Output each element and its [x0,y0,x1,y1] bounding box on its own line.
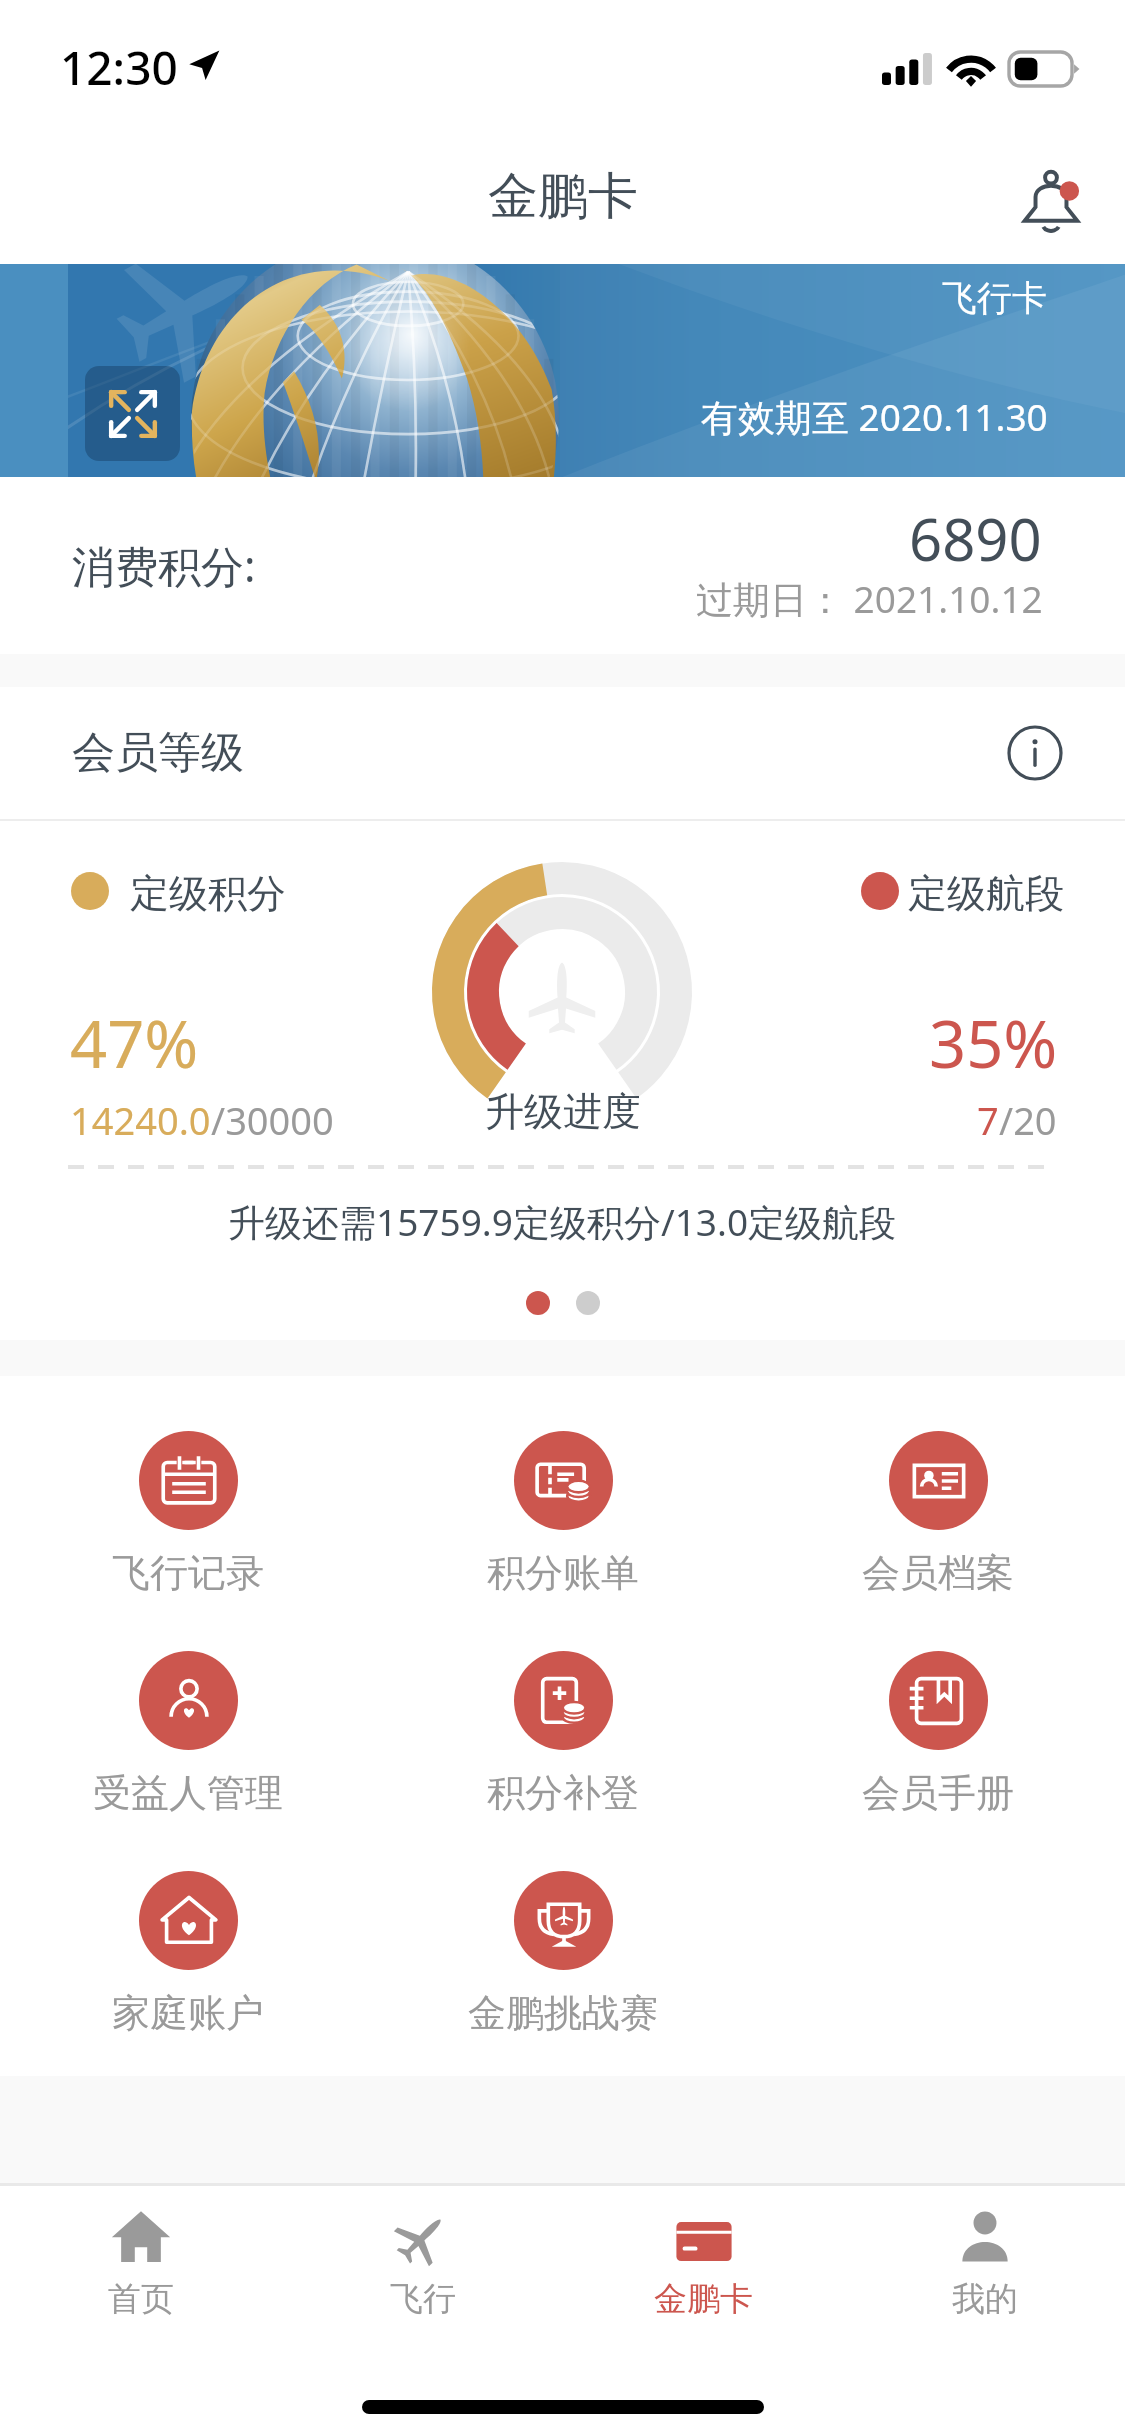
staticText: 47% [70,999,199,1088]
staticText: 6890 [909,499,1042,578]
button[interactable]: Notifications [1007,157,1095,245]
button[interactable]: 首页 [0,2205,282,2320]
button[interactable]: Level info [997,715,1073,791]
staticText: 会员档案 [862,1549,1014,1597]
staticText: 金鹏挑战赛 [468,1989,658,2037]
button[interactable]: 会员手册 [750,1625,1125,1821]
staticText: 过期日： 2021.10.12 [696,573,1043,624]
button[interactable]: 积分补登 [375,1625,750,1821]
staticText: 会员手册 [862,1769,1014,1817]
staticText: 飞行记录 [112,1549,264,1597]
button[interactable]: 金鹏卡 [563,2205,844,2320]
staticText: 金鹏卡 [654,2278,753,2320]
staticText: 有效期至 2020.11.30 [701,391,1048,442]
staticText: 12:30 [60,36,178,99]
button[interactable]: 家庭账户 [0,1845,375,2041]
staticText: 我的 [952,2278,1018,2320]
staticText: 35% [929,999,1058,1088]
staticText: 金鹏卡 [488,165,638,228]
button[interactable]: 消费积分: [0,477,1125,654]
staticText: 家庭账户 [112,1989,264,2037]
staticText: 升级进度 [485,1087,641,1136]
staticText: 积分补登 [487,1769,639,1817]
staticText: 升级还需15759.9定级积分/13.0定级航段 [228,1196,897,1247]
staticText: 定级航段 [908,869,1064,918]
staticText: 受益人管理 [93,1769,283,1817]
button[interactable]: 飞行 [282,2205,563,2320]
staticText: /20 [999,1094,1057,1146]
button[interactable]: 我的 [844,2205,1125,2320]
staticText: 消费积分: [72,536,256,595]
staticText: 飞行卡 [942,276,1047,320]
staticText: 飞行 [390,2278,456,2320]
button[interactable]: 积分账单 [375,1405,750,1601]
staticText: 会员等级 [72,726,244,780]
staticText: 首页 [108,2278,174,2320]
button[interactable]: 会员等级 [0,687,1125,819]
staticText: 定级积分 [130,869,286,918]
button[interactable]: 会员档案 [750,1405,1125,1601]
staticText: 积分账单 [487,1549,639,1597]
button[interactable]: 飞行记录 [0,1405,375,1601]
button[interactable]: Expand card [85,366,180,461]
staticText: 14240.0 [70,1094,211,1146]
staticText: 7 [977,1094,999,1146]
button[interactable]: 受益人管理 [0,1625,375,1821]
staticText: /30000 [211,1094,334,1146]
button[interactable]: 金鹏挑战赛 [375,1845,750,2041]
